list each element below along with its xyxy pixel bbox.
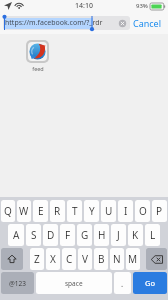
staticText: M (128, 252, 138, 266)
button[interactable]: Backspace (146, 248, 167, 270)
button[interactable]: F (60, 224, 75, 246)
button[interactable]: feed bookmark (28, 42, 47, 61)
staticText: feed (32, 65, 44, 72)
staticText: G (81, 228, 89, 242)
staticText: Z (34, 252, 40, 266)
button[interactable]: https://m.facebook.com/?_rdr (3, 16, 130, 30)
button[interactable]: . (114, 272, 131, 294)
staticText: T (72, 204, 78, 218)
other: feed bookmark (28, 42, 47, 61)
staticText: F (65, 228, 71, 242)
button[interactable]: S (26, 224, 41, 246)
staticText: D (47, 228, 55, 242)
staticText: X (50, 252, 56, 266)
button[interactable]: M (126, 248, 140, 270)
staticText: O (139, 204, 147, 218)
button[interactable]: P (152, 200, 167, 222)
button[interactable]: X (46, 248, 60, 270)
button[interactable]: W (17, 200, 31, 222)
staticText: https://m.facebook.com/?_rdr (5, 18, 103, 28)
staticText: P (156, 204, 163, 218)
staticText: H (98, 228, 106, 242)
button[interactable]: U (101, 200, 116, 222)
button[interactable]: L (145, 224, 160, 246)
staticText: I (124, 204, 128, 218)
button[interactable]: Z (30, 248, 44, 270)
button[interactable]: Cancel (133, 17, 162, 29)
button[interactable]: Shift (1, 248, 23, 270)
staticText: J (117, 228, 120, 242)
button[interactable]: E (33, 200, 48, 222)
button[interactable]: C (62, 248, 76, 270)
staticText: V (82, 252, 88, 266)
button[interactable]: B (94, 248, 108, 270)
staticText: 93% (136, 2, 148, 10)
staticText: U (105, 204, 113, 218)
staticText: A (13, 228, 20, 242)
button[interactable]: Go (133, 272, 167, 294)
staticText: E (38, 204, 44, 218)
button[interactable]: @123 (1, 272, 34, 294)
staticText: R (54, 204, 61, 218)
staticText: @123 (9, 279, 26, 288)
staticText: Y (89, 204, 95, 218)
button[interactable]: space (36, 272, 112, 294)
button[interactable]: H (94, 224, 109, 246)
staticText: space (65, 279, 83, 288)
staticText: 14:10 (75, 1, 93, 11)
button[interactable]: J (111, 224, 126, 246)
button[interactable]: Q (1, 200, 15, 222)
button[interactable]: Y (84, 200, 99, 222)
staticText: L (150, 228, 156, 242)
button[interactable]: V (78, 248, 92, 270)
button[interactable]: A (8, 224, 24, 246)
button[interactable]: D (43, 224, 58, 246)
button[interactable]: R (50, 200, 65, 222)
staticText: Go (145, 278, 155, 288)
button[interactable]: Clear text (118, 19, 127, 28)
button[interactable]: K (128, 224, 143, 246)
staticText: B (98, 252, 105, 266)
button[interactable]: N (110, 248, 124, 270)
button[interactable]: O (135, 200, 150, 222)
staticText: W (19, 204, 29, 218)
staticText: N (113, 252, 121, 266)
button[interactable]: T (67, 200, 82, 222)
button[interactable]: I (118, 200, 133, 222)
staticText: Cancel (133, 17, 162, 29)
staticText: K (132, 228, 139, 242)
staticText: Q (4, 204, 12, 218)
staticText: C (66, 252, 73, 266)
staticText: S (31, 228, 37, 242)
staticText: . (121, 278, 124, 289)
button[interactable]: G (77, 224, 92, 246)
